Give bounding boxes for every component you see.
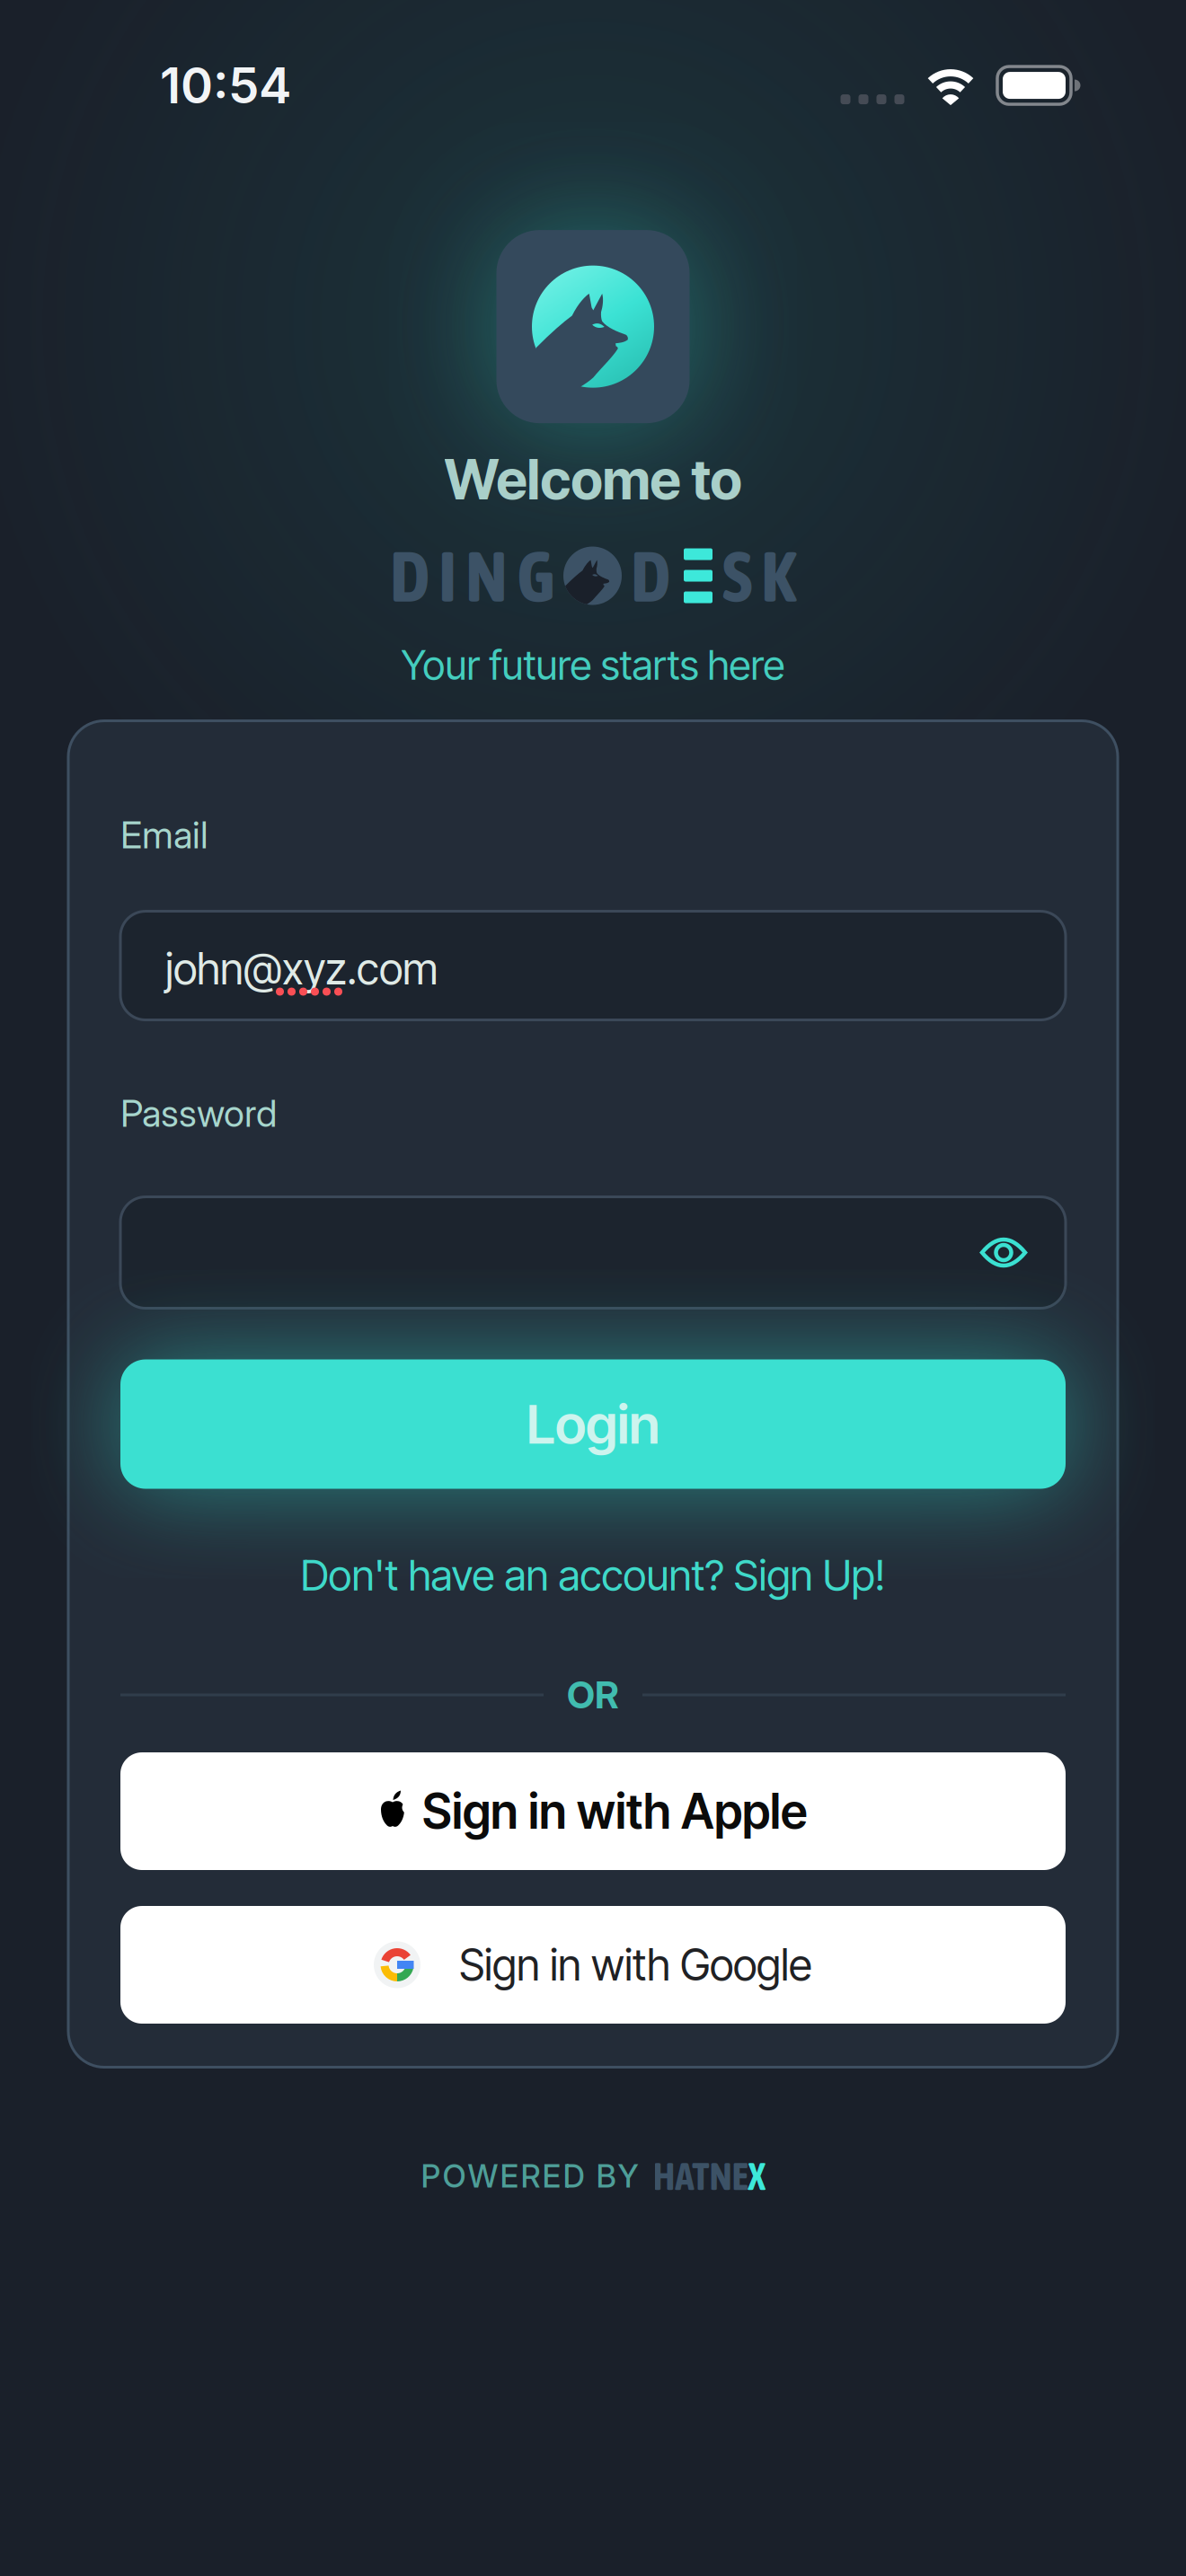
button[interactable]: Sign in with Apple [120, 1752, 1066, 1870]
staticText: G [517, 535, 554, 617]
staticText: I [438, 535, 456, 617]
staticText: Password [120, 1091, 277, 1136]
button[interactable]: Don't have an account? Sign Up! [120, 1550, 1066, 1601]
staticText: Don't have an account? Sign Up! [301, 1550, 885, 1601]
button[interactable]: Sign in with Google [120, 1906, 1066, 2024]
button[interactable]: Login [120, 1359, 1066, 1489]
staticText: OR [567, 1672, 619, 1717]
staticText: K [761, 535, 796, 617]
staticText: Email [120, 812, 208, 857]
staticText: Sign in with Apple [422, 1782, 808, 1840]
staticText: D [390, 535, 429, 617]
staticText: Your future starts here [401, 641, 785, 689]
button[interactable]: Show password [980, 1235, 1027, 1270]
staticText: john@xyz.com [165, 943, 438, 995]
staticText: S [722, 535, 752, 617]
staticText: Sign in with Google [459, 1939, 812, 1991]
staticText: Welcome to [444, 446, 742, 512]
staticText: HATNE [653, 2154, 748, 2198]
staticText: Login [527, 1391, 659, 1457]
staticText: N [465, 535, 508, 617]
staticText: 10:54 [160, 56, 291, 115]
staticText: X [748, 2154, 765, 2198]
staticText: D [631, 535, 670, 617]
staticText: P O W E R E D B Y [421, 2157, 638, 2195]
